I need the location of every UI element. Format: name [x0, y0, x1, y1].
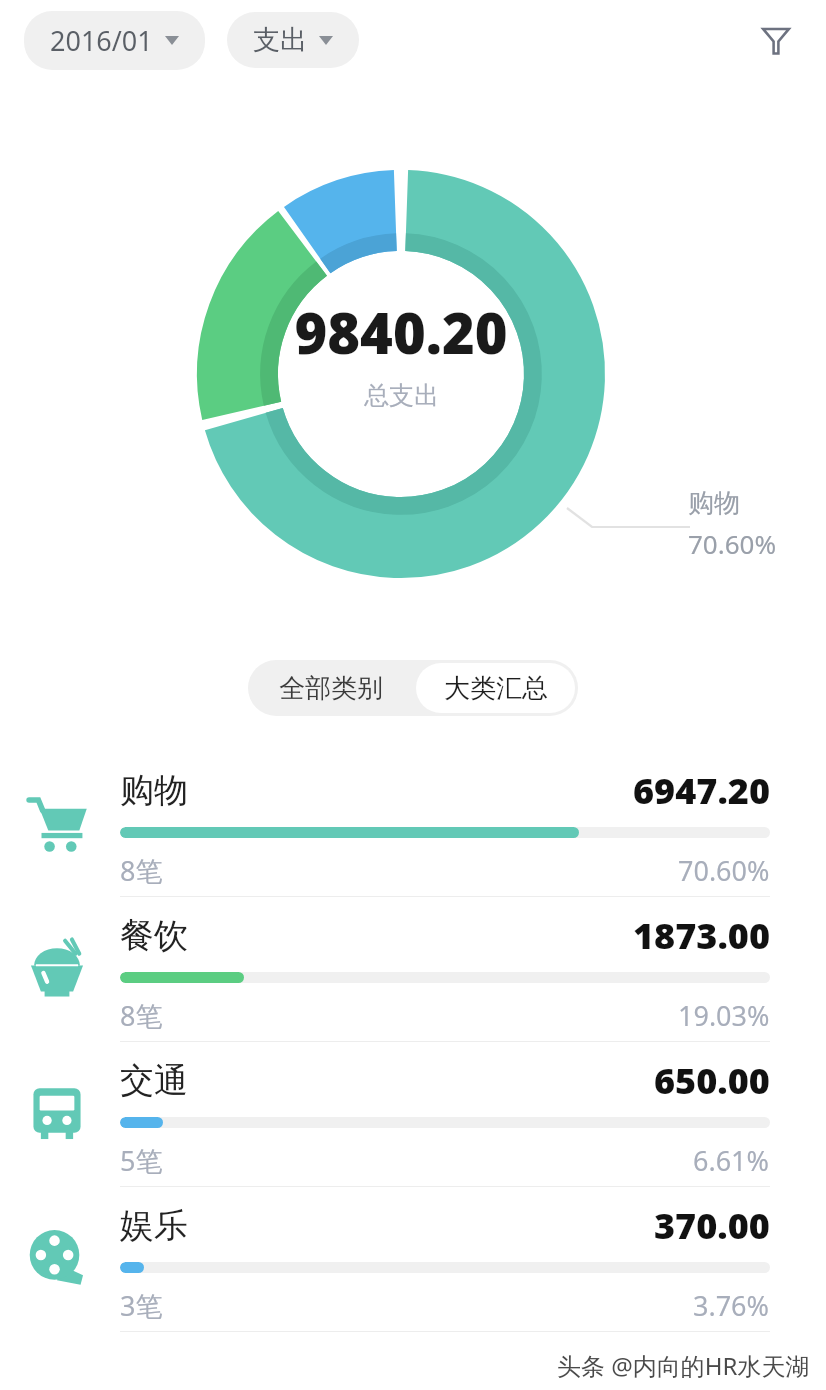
button[interactable]: 2016/01: [24, 11, 205, 70]
staticText: 全部类别: [279, 672, 383, 705]
button[interactable]: 购物: [0, 752, 826, 897]
button[interactable]: 全部类别: [248, 660, 413, 716]
staticText: 购物: [688, 487, 740, 520]
staticText: 5笔: [120, 1142, 163, 1179]
staticText: 头条 @内向的HR水天湖: [557, 1349, 810, 1382]
staticText: 支出: [253, 23, 307, 57]
staticText: 大类汇总: [444, 672, 548, 705]
button[interactable]: 大类汇总: [416, 663, 575, 713]
staticText: 370.00: [654, 1201, 770, 1250]
staticText: 交通: [120, 1059, 188, 1102]
staticText: 8笔: [120, 997, 163, 1034]
button[interactable]: 交通: [0, 1042, 826, 1187]
staticText: 娱乐: [120, 1204, 188, 1247]
staticText: 餐饮: [120, 914, 188, 957]
staticText: 19.03%: [678, 997, 770, 1034]
staticText: 6947.20: [633, 766, 770, 815]
staticText: 1873.00: [633, 911, 770, 960]
staticText: 购物: [120, 769, 188, 812]
staticText: 650.00: [654, 1056, 770, 1105]
staticText: 6.61%: [693, 1142, 770, 1179]
staticText: 3笔: [120, 1287, 163, 1324]
staticText: 70.60%: [688, 526, 777, 561]
staticText: 2016/01: [50, 22, 153, 59]
staticText: 70.60%: [678, 852, 770, 889]
staticText: 总支出: [364, 380, 439, 411]
button[interactable]: 娱乐: [0, 1187, 826, 1332]
staticText: 8笔: [120, 852, 163, 889]
staticText: 3.76%: [693, 1287, 770, 1324]
staticText: 9840.20: [294, 294, 508, 370]
button[interactable]: 支出: [227, 12, 359, 68]
button[interactable]: 餐饮: [0, 897, 826, 1042]
button[interactable]: Filter: [750, 14, 802, 66]
